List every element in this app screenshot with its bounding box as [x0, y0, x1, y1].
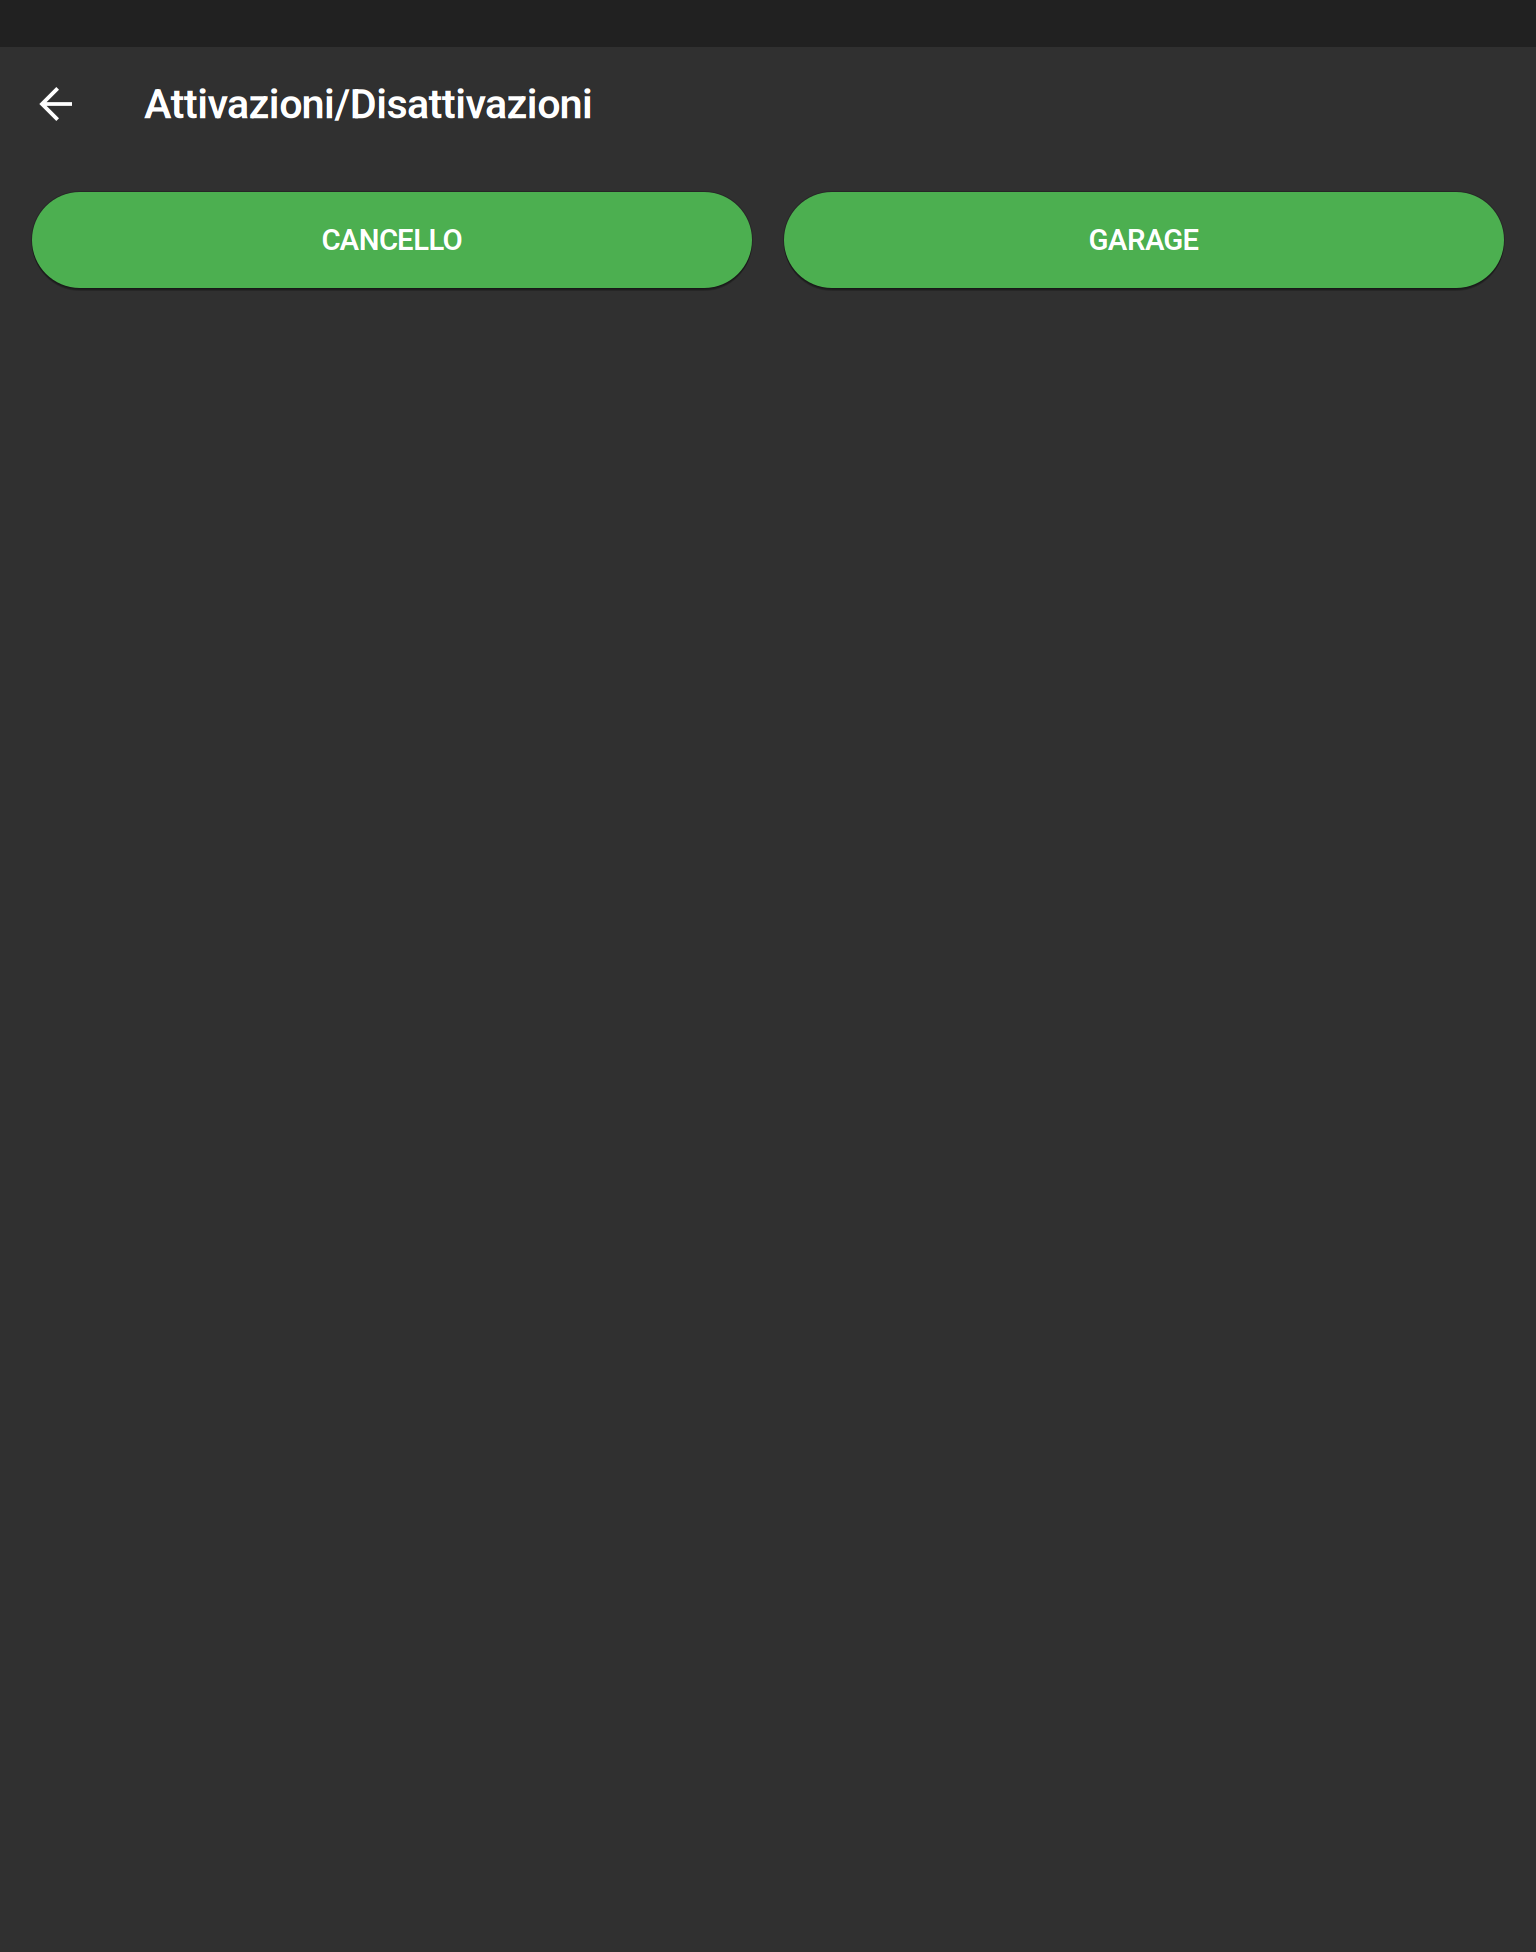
staticText: GARAGE — [1089, 223, 1199, 257]
button[interactable]: CANCELLO — [32, 192, 752, 288]
button[interactable]: Back — [0, 47, 144, 161]
button[interactable]: GARAGE — [784, 192, 1504, 288]
staticText: Attivazioni/Disattivazioni — [144, 80, 593, 128]
staticText: CANCELLO — [321, 223, 463, 257]
